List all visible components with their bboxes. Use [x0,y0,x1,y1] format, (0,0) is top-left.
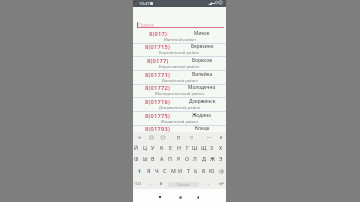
staticText: Э [219,155,223,162]
staticText: Д [202,155,206,162]
button[interactable]: Г [183,142,191,153]
button[interactable]: Б [200,165,208,176]
button[interactable]: More [206,134,212,140]
button[interactable]: Й [132,142,140,153]
staticText: 8(01793) [145,125,171,132]
staticText: А [160,155,164,162]
button[interactable]: М [169,165,177,176]
button[interactable]: Google [136,134,142,140]
button[interactable]: И [176,165,184,176]
button[interactable]: Ц [141,142,149,153]
button[interactable]: Home [176,193,184,201]
staticText: Ю [209,167,215,174]
button[interactable]: 8(01775) [133,112,226,126]
button[interactable]: Back [194,193,202,201]
button[interactable]: Я [145,165,153,176]
staticText: Дзержинский район [159,105,201,111]
staticText: Минск [194,30,210,37]
button[interactable]: Ф [132,153,140,164]
staticText: 8(01772) [145,84,171,91]
button[interactable]: Щ [200,142,208,153]
button[interactable]: Backspace [217,166,224,176]
button[interactable]: Д [200,153,208,164]
staticText: Щ [201,144,207,151]
button[interactable]: 8(0177) [133,57,226,71]
button[interactable]: GIF [160,134,166,140]
staticText: Молодечно [188,84,216,91]
staticText: Борисовский район [159,64,200,70]
staticText: Жодино [192,112,212,119]
button[interactable]: Period [205,178,212,188]
staticText: Х [219,144,223,151]
button[interactable]: Н [175,142,183,153]
button[interactable]: Е [166,142,174,153]
button[interactable]: Ь [192,165,200,176]
button[interactable]: С [161,165,169,176]
button[interactable]: 8(01772) [133,84,226,98]
staticText: Ш [192,144,198,151]
button[interactable]: У [149,142,157,153]
staticText: 8(01716) [145,98,171,105]
button[interactable]: Shift [136,166,143,176]
staticText: Ч [155,167,159,174]
button[interactable]: О [183,153,191,164]
staticText: Ф [134,155,139,162]
staticText: Е [169,144,172,151]
staticText: Г [186,144,189,151]
button[interactable]: Emoji [147,178,154,188]
button[interactable]: Русский [168,182,199,187]
button[interactable]: Л [191,153,199,164]
button[interactable]: Ю [208,165,216,176]
staticText: Жодинский район [161,119,198,125]
button[interactable]: Ж [208,153,216,164]
staticText: Дзержинск [189,98,216,105]
staticText: О [185,155,190,162]
staticText: Б [202,167,206,174]
button[interactable]: Х [217,142,225,153]
staticText: М [171,167,176,174]
staticText: 8(01775) [145,112,171,119]
staticText: Березинский район [159,50,200,56]
staticText: Вилейка [192,71,213,78]
button[interactable]: 8(01771) [133,71,226,85]
button[interactable]: Ч [153,165,161,176]
staticText: Клецк [195,125,210,132]
staticText: 8(017) [149,30,168,37]
button[interactable]: Э [217,153,225,164]
staticText: З [210,144,214,151]
button[interactable]: Clipboard [148,134,154,140]
button[interactable]: В [149,153,157,164]
staticText: 8(0177) [147,57,169,64]
button[interactable]: А [158,153,166,164]
staticText: П [168,155,172,162]
button[interactable]: Ы [141,153,149,164]
button[interactable]: Sticker [175,134,181,140]
staticText: 10:47 [139,1,150,7]
button[interactable]: 8(017) [133,30,226,44]
button[interactable]: Р [175,153,183,164]
button[interactable]: Settings [188,134,194,140]
button[interactable]: Ш [191,142,199,153]
staticText: С [163,167,167,174]
button[interactable]: К [158,142,166,153]
staticText: Й [134,144,139,151]
button[interactable]: П [166,153,174,164]
staticText: Поиск [138,21,155,28]
staticText: , [150,180,152,186]
button[interactable]: З [208,142,216,153]
button[interactable]: Т [184,165,192,176]
button[interactable]: Enter [217,178,224,188]
button[interactable]: 8(01716) [133,98,226,112]
staticText: К [160,144,164,151]
button[interactable]: Recents [156,193,164,201]
staticText: Т [187,167,190,174]
staticText: Вилейский район [162,78,198,84]
staticText: Ь [194,167,198,174]
button[interactable]: Voice input [218,134,224,140]
staticText: В [151,155,155,162]
button[interactable]: 8(01715) [133,43,226,57]
button[interactable]: 8(01793) [133,125,226,139]
staticText: Минской район [164,37,196,43]
button[interactable]: Symbols [133,178,143,188]
button[interactable]: Language [157,178,164,188]
